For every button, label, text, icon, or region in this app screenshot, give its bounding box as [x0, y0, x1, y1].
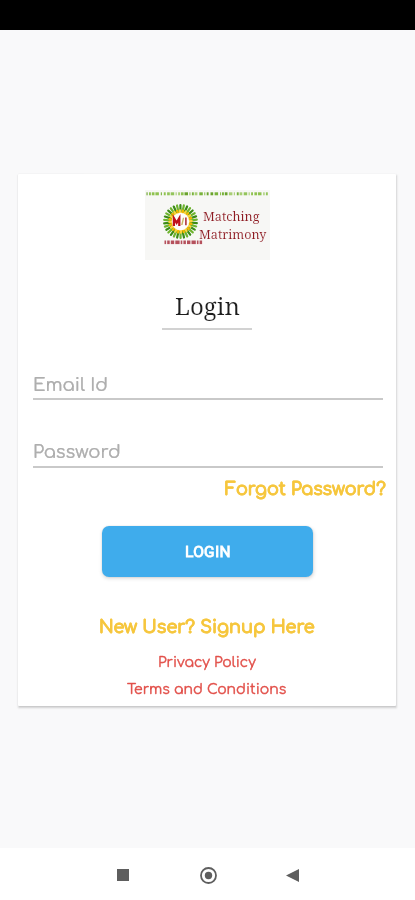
- staticText: Privacy Policy: [158, 655, 256, 671]
- staticText: Email Id: [33, 375, 108, 395]
- staticText: New User? Signup Here: [99, 617, 315, 637]
- button[interactable]: Terms and Conditions: [127, 682, 287, 698]
- button[interactable]: Forgot Password?: [225, 480, 386, 500]
- staticText: Privacy Policy: [158, 655, 256, 671]
- staticText: Password: [33, 442, 121, 462]
- button[interactable]: Recent apps: [101, 853, 145, 897]
- staticText: New User? Signup Here: [99, 617, 315, 637]
- button[interactable]: Back: [270, 853, 314, 897]
- button[interactable]: New User? Signup Here: [99, 617, 315, 637]
- staticText: Terms and Conditions: [127, 682, 287, 698]
- button[interactable]: Privacy Policy: [158, 655, 256, 671]
- staticText: Forgot Password?: [225, 480, 386, 500]
- staticText: Matching: [203, 208, 260, 225]
- staticText: Login: [175, 289, 240, 322]
- staticText: LOGIN: [185, 543, 231, 561]
- staticText: Forgot Password?: [225, 480, 386, 500]
- staticText: Email Id: [33, 375, 108, 395]
- button[interactable]: LOGIN: [102, 526, 313, 577]
- staticText: Terms and Conditions: [127, 682, 287, 698]
- staticText: Password: [33, 442, 121, 462]
- staticText: Matrimony: [199, 226, 267, 243]
- button[interactable]: Home: [186, 853, 230, 897]
